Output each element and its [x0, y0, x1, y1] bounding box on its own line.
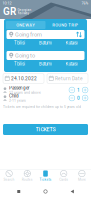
staticText: Cards	[59, 178, 68, 182]
staticText: More	[78, 178, 86, 182]
staticText: Georgian	[18, 8, 32, 12]
staticText: Tickets are required for children up to …	[3, 105, 81, 109]
button[interactable]: Decrease	[69, 87, 75, 93]
button[interactable]: Recents	[11, 185, 27, 197]
button[interactable]: Return Date	[47, 74, 88, 83]
staticText: Kutaisi	[65, 61, 77, 67]
staticText: Routes	[22, 178, 33, 182]
button[interactable]: Batumi	[32, 61, 58, 67]
staticText: Batumi	[39, 40, 52, 46]
button[interactable]: Batumi	[32, 40, 58, 46]
staticText: Tbilisi	[14, 40, 25, 46]
button[interactable]: 24.10.2022	[3, 74, 44, 83]
button[interactable]: More	[73, 169, 91, 183]
staticText: Child	[9, 93, 19, 99]
staticText: Passenger	[9, 85, 30, 91]
staticText: Tickets	[39, 178, 51, 182]
button[interactable]: Routes	[18, 169, 36, 183]
button[interactable]: Tickets	[36, 169, 55, 183]
staticText: Railway	[18, 11, 29, 15]
staticText: 1	[77, 87, 80, 93]
staticText: ROUND TRIP	[52, 22, 78, 27]
staticText: 24.10.2022	[11, 76, 37, 81]
button[interactable]: Going from	[6, 30, 84, 39]
staticText: ONE WAY	[16, 22, 35, 27]
button[interactable]: ONE WAY	[6, 21, 45, 29]
staticText: Kutaisi	[65, 40, 77, 46]
staticText: Going to	[15, 52, 35, 59]
button[interactable]: Tbilisi	[6, 61, 32, 67]
button[interactable]: Kutaisi	[58, 61, 84, 67]
button[interactable]: Tbilisi	[6, 40, 32, 46]
staticText: Batumi	[39, 61, 52, 67]
staticText: Tbilisi	[14, 61, 25, 67]
staticText: GR	[3, 6, 16, 17]
staticText: Search	[4, 178, 15, 182]
button[interactable]: Back	[64, 185, 80, 197]
button[interactable]: Going to	[6, 51, 84, 60]
button[interactable]: ROUND TRIP	[45, 21, 85, 29]
staticText: 2-11 years	[9, 99, 26, 103]
button[interactable]: Cards	[55, 169, 73, 183]
button[interactable]: Increase	[82, 95, 88, 101]
staticText: 76%	[81, 1, 88, 5]
button[interactable]: Decrease	[69, 95, 75, 101]
staticText: Going from	[15, 31, 42, 38]
staticText: Return Date	[55, 76, 83, 81]
button[interactable]: Kutaisi	[58, 40, 84, 46]
staticText: 12 years and above	[9, 91, 41, 95]
staticText: TICKETS	[35, 126, 55, 133]
button[interactable]: Search	[0, 169, 18, 183]
button[interactable]: Increase	[82, 87, 88, 93]
button[interactable]: Home	[37, 185, 53, 197]
staticText: 10:12	[2, 1, 11, 5]
button[interactable]: TICKETS	[3, 124, 88, 135]
staticText: 0	[77, 95, 80, 101]
